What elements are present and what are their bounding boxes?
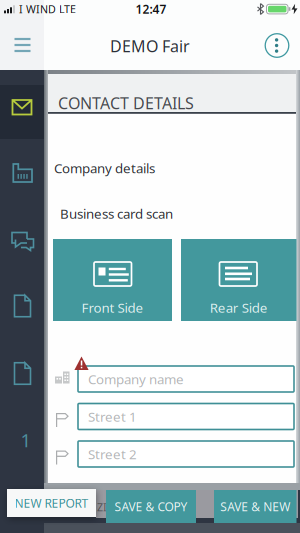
staticText: ZI (97, 500, 107, 514)
button[interactable]: Messages (11, 226, 35, 254)
staticText: Business card scan (60, 205, 173, 222)
staticText: CONTACT DETAILS (58, 92, 194, 114)
button[interactable]: NEW REPORT (7, 489, 96, 517)
button[interactable]: More options (264, 32, 290, 58)
staticText: SAVE & NEW (220, 498, 290, 514)
button[interactable]: Archive (10, 154, 36, 192)
button[interactable]: Front Side (53, 239, 172, 321)
button[interactable]: Street 1 (78, 403, 294, 429)
staticText: NEW REPORT (14, 495, 88, 511)
staticText: Company name (88, 370, 184, 388)
staticText: SAVE & COPY (114, 498, 187, 514)
staticText: Street 2 (88, 445, 137, 463)
staticText: Street 1 (88, 408, 137, 425)
button[interactable]: Documents (13, 294, 31, 318)
button[interactable]: Mail (0, 85, 44, 139)
staticText: LTE (59, 2, 76, 16)
staticText: 12:47 (135, 1, 166, 17)
staticText: 1 (20, 428, 31, 452)
staticText: I WIND (19, 2, 56, 16)
button[interactable]: SAVE & COPY (106, 490, 196, 523)
staticText: Front Side (81, 299, 143, 316)
staticText: DEMO Fair (110, 35, 190, 57)
staticText: Company details (54, 159, 155, 177)
button[interactable]: SAVE & NEW (214, 490, 296, 523)
button[interactable]: Street 2 (78, 441, 294, 467)
button[interactable]: Company name (78, 366, 294, 392)
button[interactable]: Menu (9, 31, 36, 59)
button[interactable]: Rear Side (181, 239, 296, 321)
button[interactable]: Reports (13, 362, 31, 385)
staticText: Rear Side (210, 299, 268, 316)
